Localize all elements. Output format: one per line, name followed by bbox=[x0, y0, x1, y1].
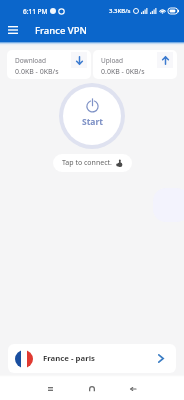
button[interactable]: Start VPN bbox=[63, 87, 121, 145]
staticText: 3.3KB/s bbox=[109, 7, 131, 15]
staticText: Upload bbox=[101, 56, 124, 65]
staticText: Download bbox=[15, 56, 46, 65]
staticText: France - paris bbox=[43, 353, 95, 364]
staticText: 0.0KB - 0KB/s bbox=[15, 67, 59, 77]
staticText: 0.0KB - 0KB/s bbox=[101, 67, 145, 77]
staticText: Tap to connect. bbox=[62, 158, 112, 168]
button[interactable]: Upload bbox=[93, 50, 177, 79]
button[interactable]: France - paris bbox=[8, 344, 176, 373]
button[interactable]: Home bbox=[82, 377, 102, 400]
button[interactable]: Tap to connect. bbox=[53, 154, 132, 172]
button[interactable]: Menu bbox=[5, 22, 21, 38]
staticText: Start bbox=[82, 116, 103, 128]
button[interactable]: Download bbox=[7, 50, 91, 79]
staticText: 6:11 PM bbox=[23, 7, 48, 16]
staticText: France VPN bbox=[35, 24, 87, 37]
button[interactable]: Back bbox=[123, 377, 143, 400]
button[interactable]: Recents bbox=[40, 377, 60, 400]
